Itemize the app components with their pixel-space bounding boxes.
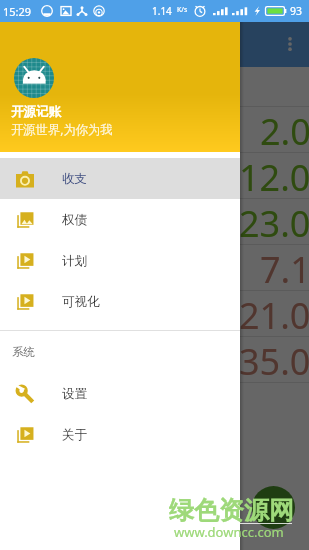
staticText: 可视化 [62,294,100,310]
staticText: 15:29 [3,4,32,19]
button[interactable]: 7.1 [0,245,309,290]
staticText: K/s [177,5,188,15]
staticText: 7.1 [260,245,309,290]
staticText: 计划 [62,253,87,269]
staticText: 绿色资源网 [169,495,294,526]
staticText: 收支 [62,171,87,187]
staticText: 设置 [62,386,87,402]
button[interactable]: 2.0 [0,107,309,152]
button[interactable]: 21.0 [0,291,309,336]
button[interactable]: 设置 [0,373,240,414]
staticText: 关于 [62,427,87,443]
staticText: 1.14 [152,4,172,18]
staticText: 93 [290,4,303,18]
button[interactable]: 可视化 [0,281,240,322]
staticText: 权债 [62,212,87,228]
button[interactable]: 权债 [0,199,240,240]
staticText: 12.0 [239,153,309,198]
button[interactable]: 23.0 [0,199,309,244]
staticText: 23.0 [239,199,309,244]
button[interactable]: 计划 [0,240,240,281]
button[interactable]: 35.0 [0,337,309,382]
staticText: www.downcc.com [174,523,284,541]
button[interactable]: 关于 [0,414,240,455]
staticText: 35.0 [239,337,309,382]
button[interactable]: 收支 [0,158,240,199]
staticText: 系统 [12,345,35,359]
staticText: 开源世界,为你为我 [11,121,113,138]
button[interactable]: Add [252,486,295,529]
staticText: 21.0 [239,291,309,336]
button[interactable]: 12.0 [0,153,309,198]
staticText: 开源记账 [11,104,61,120]
button[interactable]: More options [275,29,305,59]
staticText: 2.0 [260,107,309,152]
